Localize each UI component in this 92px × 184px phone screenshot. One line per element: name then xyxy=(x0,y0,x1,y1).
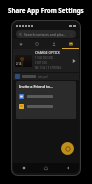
button[interactable]: Play xyxy=(70,57,77,64)
button[interactable]: Favorites xyxy=(13,39,29,48)
staticText: CHARGE OPTICK xyxy=(35,51,60,55)
staticText: CHIT 003 xyxy=(35,61,47,65)
button[interactable]: Home xyxy=(35,163,57,173)
button[interactable]: Back xyxy=(57,163,79,173)
button[interactable]: site pol xyxy=(13,73,79,80)
staticText: Share App From Settings xyxy=(8,6,84,14)
button[interactable]: Places xyxy=(62,39,79,48)
button[interactable]: Contacts xyxy=(45,39,62,48)
button[interactable]: Search contacts and plac... xyxy=(16,30,76,38)
staticText: site pol xyxy=(38,75,48,79)
staticText: 2:14 xyxy=(16,62,22,66)
button[interactable]: Recents xyxy=(29,39,45,48)
button[interactable]: 2:14 xyxy=(13,49,79,72)
button[interactable]: Recents xyxy=(13,163,35,173)
staticText: 1 500 000 000 xyxy=(35,56,54,60)
staticText: Search contacts and plac... xyxy=(24,32,67,37)
button[interactable]: Create xyxy=(61,142,74,155)
staticText: NE 13 & 15 STRONG xyxy=(35,66,62,70)
button[interactable] xyxy=(19,93,73,100)
staticText: Invite a Friend to... xyxy=(19,84,53,89)
button[interactable] xyxy=(19,103,73,110)
